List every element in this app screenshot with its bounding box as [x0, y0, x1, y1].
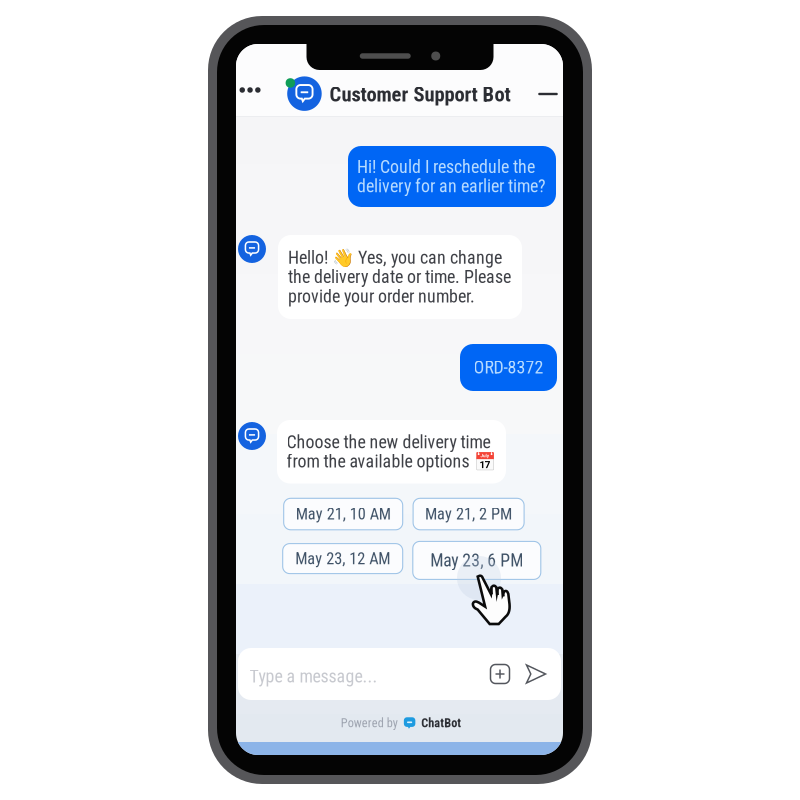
staticText: Powered by: [341, 716, 398, 730]
button[interactable]: May 21, 2 PM: [413, 498, 524, 530]
staticText: May 21, 10 AM: [296, 504, 391, 524]
staticText: ORD-8372: [473, 357, 543, 378]
button[interactable]: May 21, 10 AM: [284, 498, 403, 530]
staticText: Choose the new delivery time from the av…: [286, 432, 495, 472]
button[interactable]: More options: [236, 73, 267, 107]
staticText: May 23, 6 PM: [430, 550, 523, 571]
button[interactable]: Add attachment: [487, 661, 513, 687]
button[interactable]: May 23, 6 PM: [413, 541, 541, 579]
staticText: May 23, 12 AM: [295, 549, 390, 568]
staticText: Type a message...: [249, 666, 377, 687]
button[interactable]: May 23, 12 AM: [283, 544, 403, 574]
staticText: Hi! Could I reschedule the delivery for …: [357, 156, 546, 197]
staticText: Hello! 👋 Yes, you can change the deliver…: [288, 247, 511, 307]
button[interactable]: Minimize: [533, 79, 563, 109]
staticText: Customer Support Bot: [329, 82, 510, 107]
button[interactable]: Send: [523, 661, 549, 687]
staticText: May 21, 2 PM: [425, 504, 512, 524]
staticText: ChatBot: [421, 716, 461, 730]
